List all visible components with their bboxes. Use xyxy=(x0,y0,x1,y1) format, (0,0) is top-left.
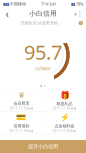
staticText: 信用极好 xyxy=(35,66,51,71)
staticText: ? xyxy=(80,20,82,26)
button[interactable]: Share xyxy=(72,8,86,19)
staticText: 2017.11.30到期 xyxy=(53,129,77,133)
staticText: 信用借款 xyxy=(13,123,29,128)
staticText: ▮▮ 78% xyxy=(71,1,83,7)
button[interactable]: ♛ xyxy=(0,89,43,111)
staticText: ▮▮▮ 中国移动 xyxy=(3,1,26,6)
button[interactable]: 🎁 xyxy=(43,89,86,111)
staticText: ⚡ xyxy=(60,113,70,122)
staticText: 2017.11.30到期 xyxy=(9,129,33,133)
staticText: 信用生活 从这里开始 xyxy=(21,20,58,25)
staticText: 下午3:41 xyxy=(41,1,56,7)
staticText: 会员尊享 xyxy=(13,101,29,106)
staticText: ‹ xyxy=(5,6,8,21)
staticText: 提升小白信用 xyxy=(28,143,58,150)
button[interactable]: Back xyxy=(0,8,14,19)
staticText: 精选礼品 xyxy=(57,101,73,106)
button[interactable]: 提升小白信用 xyxy=(0,140,86,153)
staticText: 2017.11.30到期 xyxy=(53,107,77,110)
staticText: 2017.11.30到期 xyxy=(9,107,33,110)
button[interactable]: ⚡ xyxy=(43,112,86,134)
button[interactable]: 💳 xyxy=(0,112,43,134)
staticText: ‹⋮ xyxy=(74,9,83,18)
staticText: 🎁 xyxy=(60,90,70,100)
staticText: 点金福利金 xyxy=(55,123,75,128)
button[interactable]: Help xyxy=(79,21,86,25)
staticText: 小白信用 xyxy=(29,9,57,18)
staticText: 95.7 xyxy=(24,39,62,65)
staticText: ♛ xyxy=(18,90,25,100)
staticText: 💳 xyxy=(16,113,26,122)
